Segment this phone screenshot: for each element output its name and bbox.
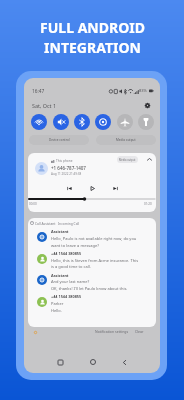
staticText: want to leave a message? (51, 243, 99, 248)
staticText: +44 1544 380855 (51, 294, 82, 299)
staticText: Hello, Paulo is not available right now,… (51, 236, 137, 241)
staticText: is a good time to call. (51, 264, 91, 269)
staticText: OK, thanks! I'll let Paulo know about th… (51, 286, 128, 291)
button[interactable]: Mute (53, 114, 69, 130)
button[interactable]: Wi-Fi (31, 114, 47, 130)
button[interactable]: Play (87, 183, 97, 193)
button[interactable]: Settings (142, 100, 152, 110)
button[interactable]: Recents (54, 356, 66, 368)
staticText: Hello, this is Steven from Acme insuranc… (51, 258, 139, 263)
button[interactable]: Collapse (146, 156, 153, 163)
staticText: Assistant (51, 229, 69, 234)
button[interactable]: Airplane mode (117, 114, 133, 130)
staticText: +1 646-787-1407 (51, 165, 86, 171)
button[interactable]: Auto rotate (95, 114, 111, 130)
staticText: 00:00 (29, 202, 37, 206)
button[interactable]: Back (118, 356, 130, 368)
button[interactable]: Notification settings (95, 329, 129, 334)
staticText: Device control (49, 138, 70, 142)
staticText: Notification settings (95, 329, 129, 334)
button[interactable]: Flashlight (138, 114, 154, 130)
button[interactable]: Device control (29, 135, 89, 145)
staticText: This phone (56, 159, 73, 163)
staticText: Incoming Call (58, 221, 80, 225)
staticText: 01:20 (144, 202, 152, 206)
staticText: Aug 11 2022 21:49:38 (51, 172, 82, 176)
staticText: FULL ANDROID (40, 18, 145, 37)
staticText: Media output (116, 138, 136, 142)
button[interactable]: Bluetooth (74, 114, 90, 130)
staticText: Assistant (51, 273, 69, 278)
staticText: Media output (119, 158, 136, 162)
staticText: Hello. (51, 308, 62, 313)
button[interactable]: Clear (135, 329, 144, 334)
staticText: And your last name? (51, 279, 90, 284)
button[interactable]: Previous (64, 183, 74, 193)
button[interactable]: Home (87, 356, 99, 368)
staticText: 16:47 (32, 88, 45, 95)
staticText: Parker (51, 301, 64, 306)
staticText: Clear (135, 329, 144, 334)
staticText: +44 1544 380855 (51, 251, 82, 256)
button[interactable]: Next (110, 183, 120, 193)
staticText: 83% (139, 88, 147, 93)
staticText: INTEGRATION (44, 38, 141, 57)
staticText: Call Assistant (35, 221, 56, 225)
staticText: Sat, Oct 1 (32, 102, 57, 109)
button[interactable]: Media output (96, 135, 156, 145)
button[interactable]: Media output (119, 156, 136, 163)
